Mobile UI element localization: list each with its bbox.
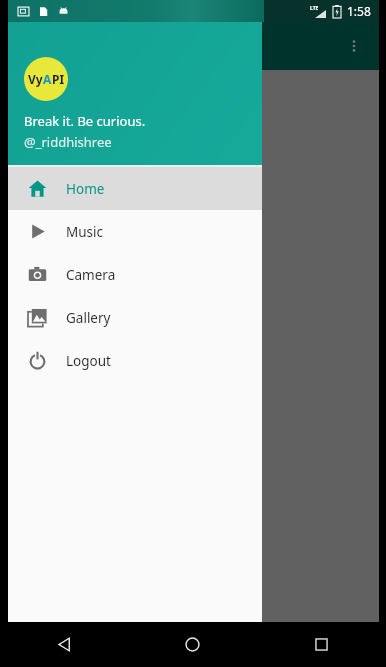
button[interactable]: Back	[0, 622, 128, 667]
staticText: Logout	[66, 352, 111, 370]
staticText: Home	[66, 180, 105, 198]
button[interactable]: Camera	[8, 253, 262, 296]
button[interactable]: Logout	[8, 339, 262, 382]
button[interactable]	[8, 87, 379, 133]
button[interactable]	[8, 240, 379, 286]
staticText: Break it. Be curious.	[24, 112, 146, 130]
staticText: Camera	[66, 266, 116, 284]
staticText: 1:58	[347, 3, 371, 19]
button[interactable]: Home	[128, 622, 257, 667]
button[interactable]: Music	[8, 210, 262, 253]
button[interactable]	[8, 138, 379, 184]
button[interactable]	[8, 342, 379, 388]
staticText: @_riddhishree	[24, 133, 112, 151]
staticText: Gallery	[66, 309, 111, 327]
button[interactable]	[8, 393, 379, 439]
staticText: Music	[66, 223, 104, 241]
staticText: Vy	[28, 71, 43, 87]
staticText: LTE	[310, 5, 319, 12]
staticText: A	[43, 71, 52, 87]
staticText: PI	[52, 71, 65, 87]
button[interactable]	[8, 291, 379, 337]
button[interactable]: Home	[8, 167, 262, 210]
button[interactable]: Gallery	[8, 296, 262, 339]
button[interactable]: More options	[337, 29, 371, 63]
button[interactable]: Recents	[257, 622, 386, 667]
button[interactable]: Vy	[8, 22, 262, 165]
button[interactable]	[8, 189, 379, 235]
